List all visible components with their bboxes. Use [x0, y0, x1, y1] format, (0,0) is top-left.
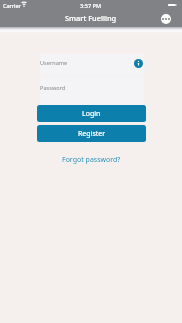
button[interactable]: Username field: [40, 54, 144, 76]
button[interactable]: Login: [37, 105, 146, 122]
staticText: Password: [40, 84, 66, 92]
button[interactable]: Info: [134, 59, 143, 68]
button[interactable]: Register: [37, 125, 146, 142]
staticText: Username: [40, 59, 68, 67]
staticText: Forgot password?: [62, 155, 121, 165]
staticText: Login: [82, 109, 101, 119]
button[interactable]: Password field: [40, 77, 144, 105]
staticText: Carrier: [3, 2, 21, 9]
staticText: Register: [78, 129, 106, 139]
button[interactable]: Forgot password?: [58, 154, 125, 166]
staticText: Smart Fuelling: [65, 13, 117, 23]
staticText: 3:57 PM: [80, 2, 102, 10]
button[interactable]: More options: [161, 14, 171, 24]
